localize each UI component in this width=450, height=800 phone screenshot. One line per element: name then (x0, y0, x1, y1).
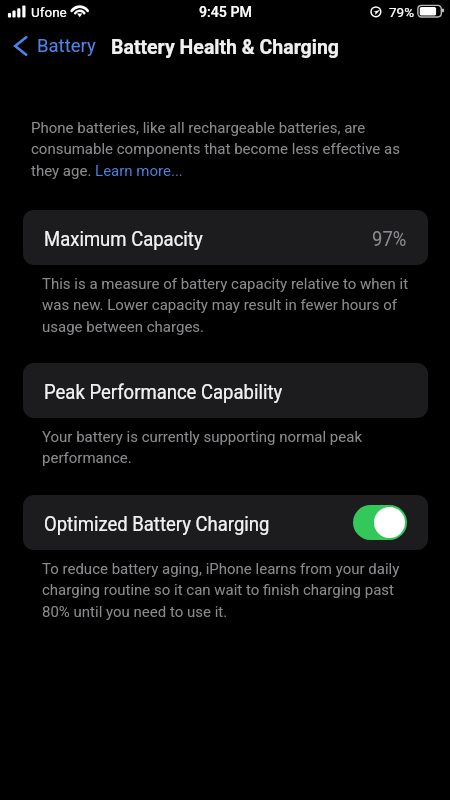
button[interactable]: Peak Performance Capability (23, 363, 428, 418)
staticText: Battery (37, 35, 96, 57)
staticText: Your battery is currently supporting nor… (42, 428, 412, 467)
button[interactable]: Battery (0, 30, 106, 62)
button[interactable]: Optimized Battery Charging (23, 495, 428, 550)
staticText: Phone batteries, like all rechargeable b… (31, 119, 418, 180)
staticText: 79% (389, 4, 415, 20)
staticText: 9:45 PM (199, 4, 252, 21)
button[interactable]: Maximum Capacity (23, 210, 428, 265)
staticText: 97% (372, 228, 407, 251)
staticText: Battery Health & Charging (111, 36, 339, 59)
staticText: Ufone (31, 4, 67, 20)
button[interactable]: Optimized Battery Charging toggle (353, 505, 407, 540)
staticText: Optimized Battery Charging (44, 513, 270, 537)
staticText: This is a measure of battery capacity re… (42, 275, 412, 336)
staticText: To reduce battery aging, iPhone learns f… (42, 560, 412, 621)
staticText: Maximum Capacity (44, 228, 203, 251)
staticText: Peak Performance Capability (44, 381, 283, 405)
